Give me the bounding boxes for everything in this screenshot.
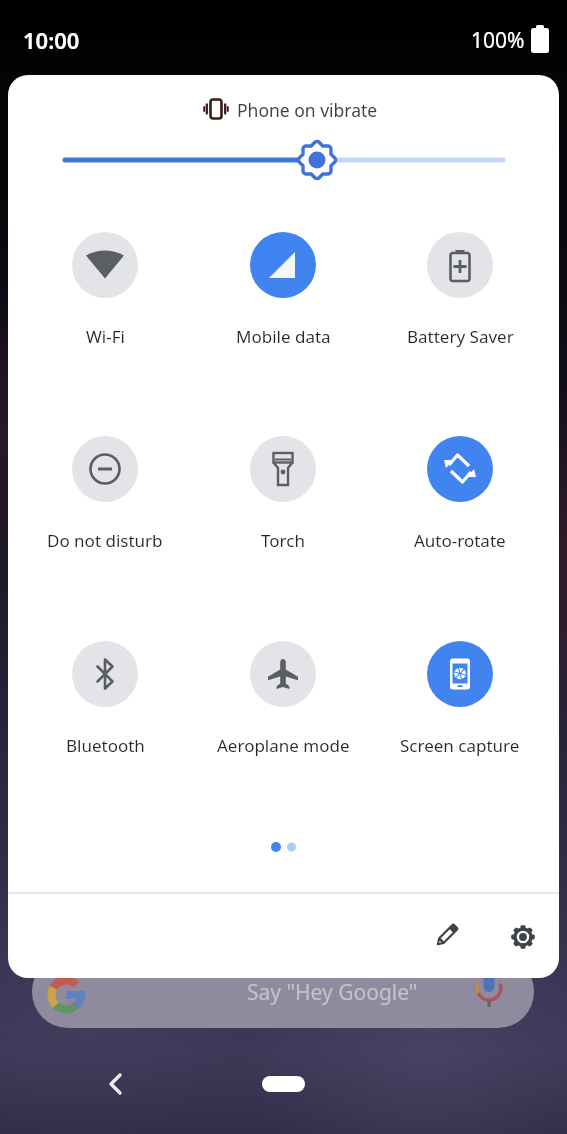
staticText: Do not disturb xyxy=(47,529,163,552)
staticText: 10:00 xyxy=(23,25,80,55)
staticText: Auto-rotate xyxy=(414,529,506,552)
staticText: Bluetooth xyxy=(66,734,145,757)
staticText: Phone on vibrate xyxy=(237,98,378,122)
staticText: Mobile data xyxy=(236,325,331,348)
staticText: 100% xyxy=(471,26,525,55)
staticText: Screen capture xyxy=(400,734,520,757)
staticText: Torch xyxy=(261,529,305,552)
staticText: Say "Hey Google" xyxy=(247,978,418,1007)
staticText: Wi-Fi xyxy=(86,325,125,348)
staticText: Battery Saver xyxy=(407,325,514,348)
staticText: Aeroplane mode xyxy=(217,734,350,757)
